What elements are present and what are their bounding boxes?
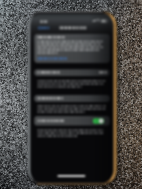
button[interactable]: Optimoitu akun lataus bbox=[36, 115, 110, 126]
button[interactable]: Takaisin Asetukset bbox=[36, 25, 50, 31]
button[interactable]: Lisatietoja akun kunnosta bbox=[38, 55, 72, 61]
button[interactable]: Akun kapasiteetti 76 % bbox=[36, 68, 110, 76]
button[interactable]: Huippusuorituskyky bbox=[36, 95, 110, 103]
